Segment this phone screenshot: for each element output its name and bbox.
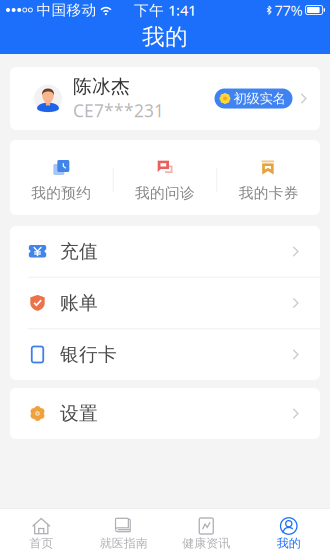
button[interactable]: 就医指南 <box>82 508 165 550</box>
button[interactable]: 陈冰杰 <box>10 67 320 130</box>
button[interactable]: 设置 <box>10 388 320 439</box>
button[interactable]: 充值 <box>10 226 320 277</box>
button[interactable]: 首页 <box>0 508 82 550</box>
staticText: 我的预约 <box>31 184 91 202</box>
button[interactable]: 我的预约 <box>10 140 113 215</box>
staticText: 我的卡券 <box>239 184 299 202</box>
staticText: 77% <box>275 0 303 20</box>
staticText: 陈冰杰 <box>73 75 130 98</box>
staticText: 中国移动 <box>36 1 96 19</box>
staticText: 银行卡 <box>60 343 117 366</box>
staticText: CE7***231 <box>73 99 164 122</box>
button[interactable]: 健康资讯 <box>165 508 247 550</box>
staticText: 账单 <box>60 291 98 314</box>
staticText: 初级实名 <box>233 90 285 107</box>
staticText: 设置 <box>60 402 98 425</box>
staticText: 我的 <box>277 536 301 550</box>
staticText: 我的问诊 <box>135 184 195 202</box>
button[interactable]: 我的卡券 <box>217 140 320 215</box>
staticText: 下午 1:41 <box>134 0 196 20</box>
staticText: 我的 <box>142 23 188 51</box>
staticText: 首页 <box>29 536 53 550</box>
button[interactable]: 我的 <box>247 508 330 550</box>
staticText: 就医指南 <box>100 536 148 550</box>
staticText: 健康资讯 <box>182 536 230 550</box>
button[interactable]: 银行卡 <box>10 329 320 380</box>
button[interactable]: 账单 <box>10 277 320 328</box>
staticText: 充值 <box>60 240 98 263</box>
button[interactable]: 我的问诊 <box>114 140 216 215</box>
